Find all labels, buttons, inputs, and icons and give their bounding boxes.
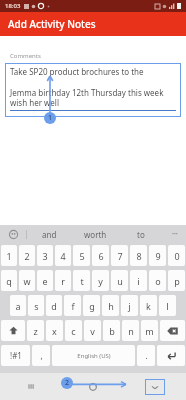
button[interactable]: 7 [111,245,128,266]
staticText: w [23,275,31,287]
staticText: e [42,275,48,287]
staticText: 4 [60,250,66,262]
staticText: and [42,229,57,240]
button[interactable]: Recents [0,373,62,400]
button[interactable]: x [46,320,63,341]
button[interactable]: w [19,270,35,291]
staticText: Jemma birthday 12th Thursday this week w… [10,87,176,108]
staticText: 9 [155,250,161,262]
button[interactable]: 8 [130,245,147,266]
button[interactable]: k [140,295,157,316]
button[interactable]: a [10,295,26,316]
button[interactable]: 6 [92,245,109,266]
staticText: h [108,300,114,312]
button[interactable]: , [32,345,50,366]
staticText: x [52,325,57,337]
button[interactable]: m [141,320,158,341]
button[interactable]: Hide keyboard [145,379,165,395]
staticText: m [145,325,154,337]
button[interactable]: worth [72,225,118,243]
button[interactable]: f [64,295,81,316]
button[interactable]: r [55,270,71,291]
button[interactable]: d [46,295,62,316]
staticText: c [71,325,76,337]
button[interactable]: t [73,270,90,291]
staticText: b [109,325,115,337]
button[interactable]: Backspace [160,320,185,341]
button[interactable]: v [84,320,101,341]
staticText: 3 [42,250,48,262]
staticText: 8 [136,250,142,262]
staticText: to [137,229,145,240]
staticText: n [128,325,134,337]
staticText: . [145,350,148,361]
button[interactable]: b [103,320,120,341]
staticText: English (US) [77,352,111,360]
button[interactable]: to [118,225,164,243]
button[interactable]: s [28,295,44,316]
button[interactable]: Home [62,373,124,400]
staticText: t [80,275,84,287]
staticText: 7 [117,250,123,262]
button[interactable]: . [137,345,155,366]
staticText: 2 [65,378,70,388]
staticText: y [98,275,103,287]
button[interactable]: 4 [55,245,71,266]
button[interactable]: q [1,270,17,291]
staticText: ••• [172,231,178,238]
button[interactable]: Add Activity Notes [0,12,186,36]
button[interactable]: h [102,295,119,316]
staticText: , [40,350,43,361]
button[interactable]: g [83,295,100,316]
staticText: a [15,300,21,312]
button[interactable]: 0 [168,245,185,266]
staticText: 18:03 [5,2,21,10]
staticText: v [90,325,95,337]
button[interactable]: l [159,295,176,316]
button[interactable]: u [111,270,128,291]
button[interactable]: z [27,320,44,341]
staticText: l [166,300,169,312]
button[interactable]: i [130,270,147,291]
staticText: r [61,275,65,287]
button[interactable]: !#1 [1,345,30,366]
button[interactable]: o [149,270,166,291]
button[interactable]: English (US) [52,345,135,366]
staticText: 1 [48,113,53,123]
button[interactable]: c [65,320,82,341]
button[interactable]: 3 [37,245,53,266]
button[interactable]: Take SP20 product brochures to the meeti… [5,63,181,117]
staticText: s [34,300,39,312]
button[interactable]: j [121,295,138,316]
staticText: k [146,300,151,312]
staticText: Comments [10,52,41,60]
button[interactable]: Stickers [0,225,26,243]
staticText: worth [84,229,107,240]
button[interactable]: 9 [149,245,166,266]
staticText: f [71,300,75,312]
staticText: d [51,300,57,312]
staticText: q [6,275,12,287]
staticText: 5 [79,250,85,262]
button[interactable]: 2 [19,245,35,266]
button[interactable]: e [37,270,53,291]
staticText: j [128,300,131,312]
staticText: 6 [98,250,104,262]
button[interactable]: Shift [1,320,25,341]
staticText: g [89,300,95,312]
button[interactable]: and [27,225,72,243]
button[interactable]: 1 [1,245,17,266]
button[interactable]: More suggestions [164,225,186,243]
staticText: Take SP20 product brochures to the meeti… [10,66,176,77]
button[interactable]: Enter [157,345,185,366]
button[interactable]: y [92,270,109,291]
staticText: u [117,275,123,287]
button[interactable]: p [168,270,185,291]
button[interactable]: 5 [73,245,90,266]
button[interactable]: n [122,320,139,341]
staticText: z [33,325,38,337]
staticText: i [137,275,140,287]
staticText: !#1 [10,350,22,361]
staticText: 2 [24,250,30,262]
staticText: p [174,275,180,287]
